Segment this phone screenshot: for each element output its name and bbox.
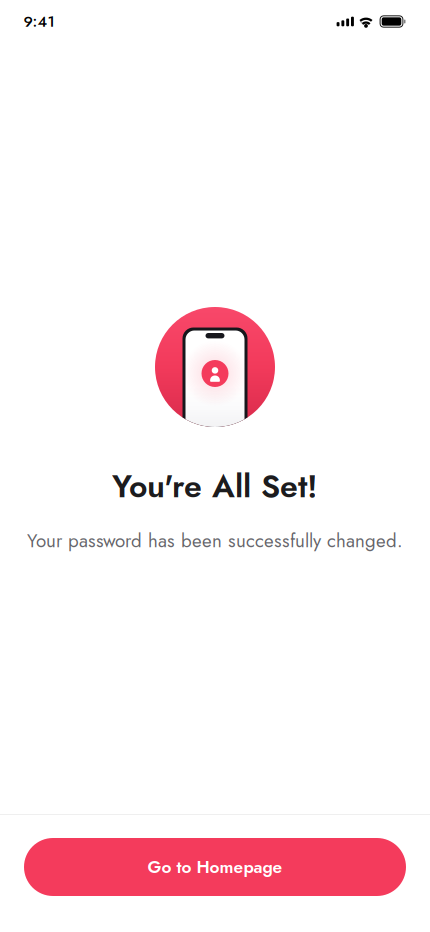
staticText: You're All Set! (112, 463, 318, 509)
button[interactable]: Go to Homepage (24, 838, 406, 896)
staticText: 9:41 (23, 10, 54, 33)
staticText: Go to Homepage (147, 854, 282, 879)
staticText: Your password has been successfully chan… (27, 527, 403, 554)
